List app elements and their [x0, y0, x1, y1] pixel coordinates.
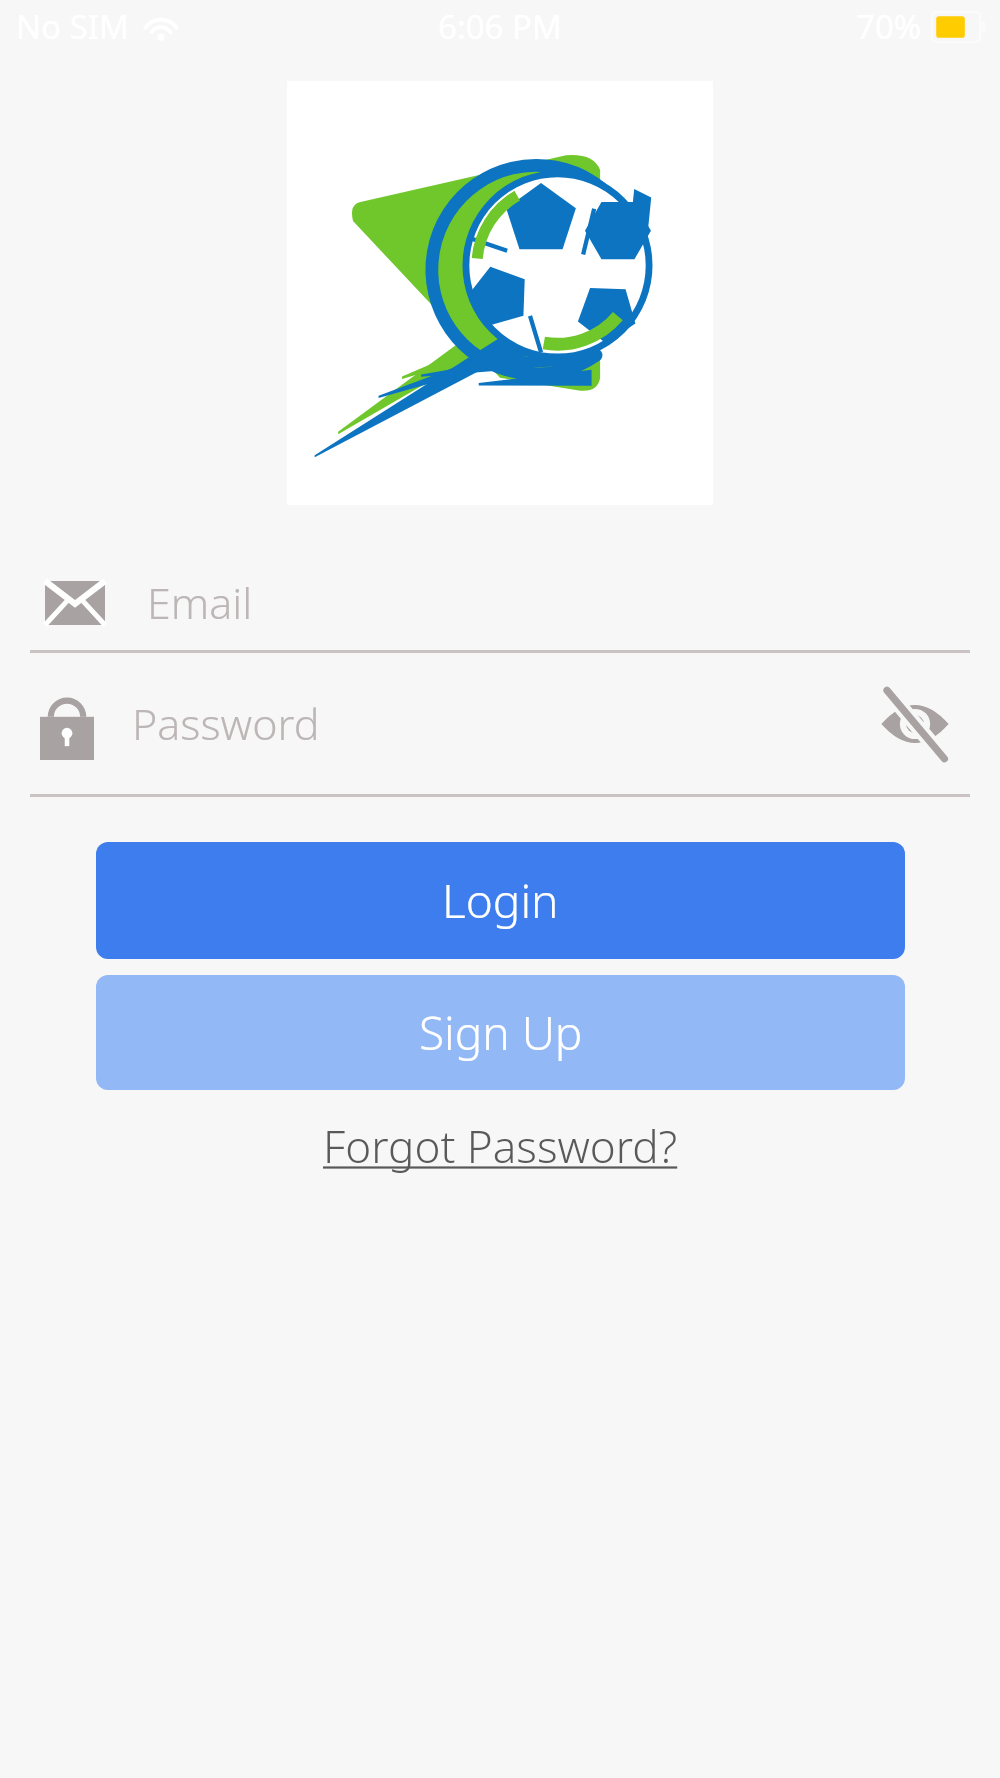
button[interactable]: Sign Up	[96, 975, 905, 1090]
staticText: Forgot Password?	[323, 1116, 678, 1176]
button[interactable]: Email	[0, 555, 1000, 650]
button[interactable]: Forgot Password?	[323, 1116, 678, 1176]
staticText: Sign Up	[419, 1001, 583, 1064]
staticText: Password	[132, 694, 320, 753]
button[interactable]: Password	[0, 653, 1000, 794]
button[interactable]: Login	[96, 842, 905, 959]
staticText: Login	[442, 869, 559, 932]
staticText: Email	[147, 573, 253, 632]
button[interactable]: Show password	[870, 679, 960, 769]
